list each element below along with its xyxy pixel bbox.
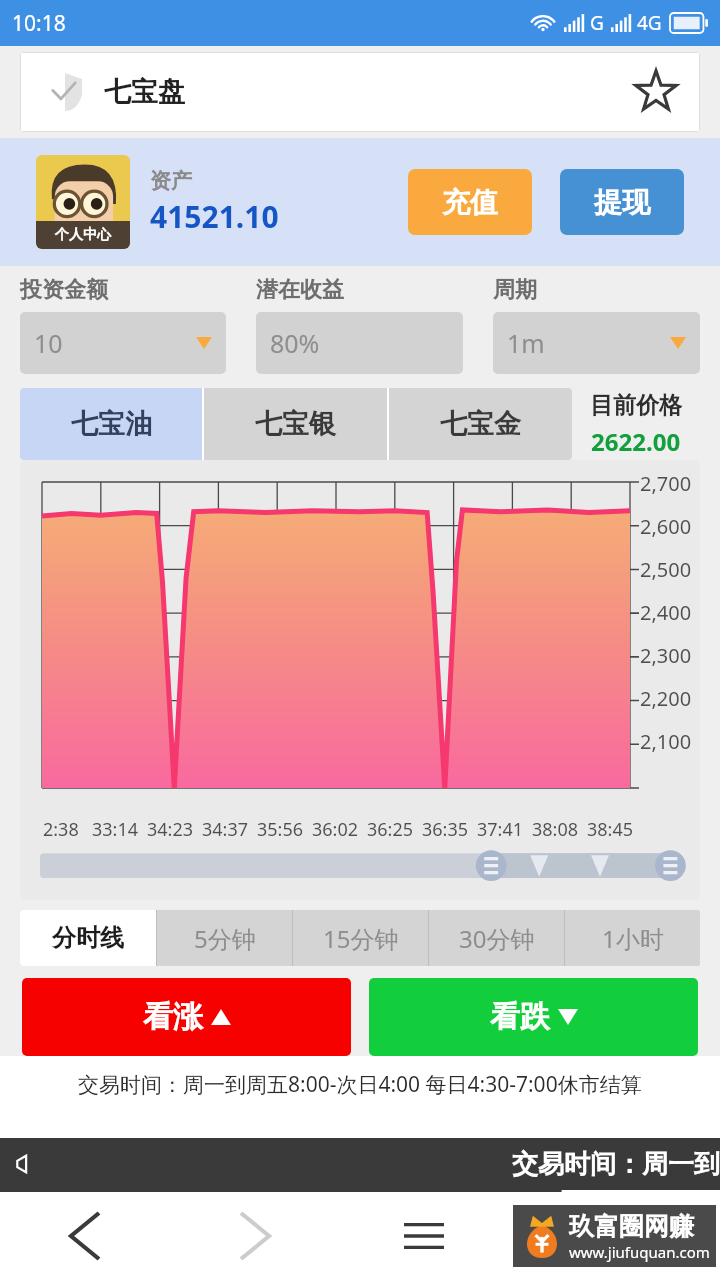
staticText: 35:56 [257,817,304,842]
staticText: 4G [637,10,662,36]
staticText: 37:41 [477,817,524,842]
button[interactable]: Forward [170,1192,339,1280]
button[interactable]: Favorite [628,64,684,120]
staticText: 交易时间：周一到 [512,1148,720,1181]
staticText: 2622.00 [591,425,681,458]
staticText: 七宝油 [71,407,152,441]
staticText: 七宝盘 [104,75,185,109]
staticText: 七宝银 [255,407,336,441]
button[interactable]: 分时线 [20,910,156,966]
other: Announcement [10,1151,36,1177]
button[interactable]: 个人中心 [36,155,130,249]
staticText: 玖富圈网赚 [569,1211,694,1242]
staticText: 2,300 [640,642,692,669]
staticText: G [590,10,604,36]
staticText: 36:25 [367,817,414,842]
button[interactable]: 1小时 [565,910,700,966]
button[interactable]: 七宝银 [204,388,387,460]
button[interactable]: 看涨 [22,978,351,1056]
button[interactable]: Menu [339,1192,508,1280]
button[interactable]: 七宝盘 [20,52,700,132]
staticText: 30分钟 [459,922,535,955]
staticText: 36:35 [422,817,469,842]
staticText: 2,600 [640,513,692,540]
staticText: 2,400 [640,599,692,626]
button[interactable]: 15分钟 [293,910,428,966]
staticText: 36:02 [312,817,359,842]
staticText: 38:45 [587,817,634,842]
staticText: 33:14 [92,817,139,842]
button[interactable]: 七宝金 [389,388,572,460]
staticText: 看跌 [490,998,550,1036]
staticText: 交易时间：周一到周五8:00-次日4:00 每日4:30-7:00休市结算 [78,1070,642,1099]
button[interactable]: 5分钟 [157,910,292,966]
staticText: 周期 [493,276,537,304]
staticText: 5分钟 [194,922,256,955]
staticText: 41521.10 [150,196,279,237]
staticText: 38:08 [532,817,579,842]
staticText: 个人中心 [55,226,111,244]
staticText: 34:23 [147,817,194,842]
button[interactable]: 七宝油 [20,388,202,460]
button[interactable]: 充值 [408,169,532,235]
staticText: 七宝金 [440,407,521,441]
staticText: www.jiufuquan.com [569,1242,710,1262]
staticText: 10:18 [12,9,66,38]
button[interactable] [40,846,680,886]
staticText: 看涨 [143,998,203,1036]
staticText: 投资金额 [20,276,108,304]
staticText: 1m [507,326,545,360]
staticText: 34:37 [202,817,249,842]
staticText: 潜在收益 [256,276,344,304]
button[interactable]: 1m [493,312,700,374]
button[interactable]: 10 [20,312,226,374]
staticText: 2,500 [640,556,692,583]
staticText: 目前价格 [590,391,682,420]
button[interactable]: 80% [256,312,463,374]
staticText: 提现 [594,185,650,220]
staticText: 2,200 [640,685,692,712]
staticText: 10 [34,326,63,360]
staticText: 资产 [150,168,192,194]
button[interactable]: Back [0,1192,170,1280]
button[interactable]: 30分钟 [429,910,564,966]
staticText: 80% [270,326,320,360]
button[interactable]: 提现 [560,169,684,235]
staticText: 2:38 [43,817,79,842]
staticText: 15分钟 [323,922,399,955]
staticText: 2,100 [640,728,692,755]
staticText: 分时线 [52,923,124,953]
staticText: 1小时 [602,922,664,955]
staticText: 2,700 [640,470,692,497]
staticText: 充值 [442,185,498,220]
button[interactable]: 看跌 [369,978,698,1056]
